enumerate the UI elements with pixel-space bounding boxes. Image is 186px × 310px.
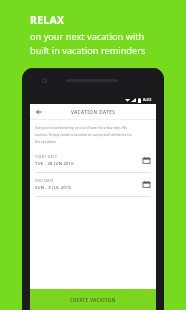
other: Pick date xyxy=(143,181,150,188)
staticText: Going on a weekend trip or out of town f… xyxy=(35,125,128,130)
staticText: built in vacation reminders xyxy=(30,44,146,57)
staticText: on your next vacation with xyxy=(30,30,145,43)
staticText: START DATE xyxy=(35,154,58,159)
button[interactable]: START DATE xyxy=(30,149,156,172)
staticText: worries. Simply create a vacation to sus… xyxy=(35,132,132,137)
staticText: RELAX xyxy=(30,13,65,27)
other: Pick date xyxy=(143,157,150,164)
staticText: the set dates. xyxy=(35,139,57,144)
staticText: TUE - 28 JUN 2016 xyxy=(35,161,74,167)
button[interactable]: CREATE VACATION xyxy=(30,289,156,310)
button[interactable]: END DATE xyxy=(30,173,156,196)
staticText: CREATE VACATION xyxy=(70,297,116,303)
staticText: SUN - 3 JUL 2016 xyxy=(35,185,72,191)
staticText: 8:22 xyxy=(143,97,152,103)
staticText: VACATION DATES xyxy=(71,109,116,115)
button[interactable]: Back xyxy=(34,107,44,117)
staticText: END DATE xyxy=(35,178,54,183)
